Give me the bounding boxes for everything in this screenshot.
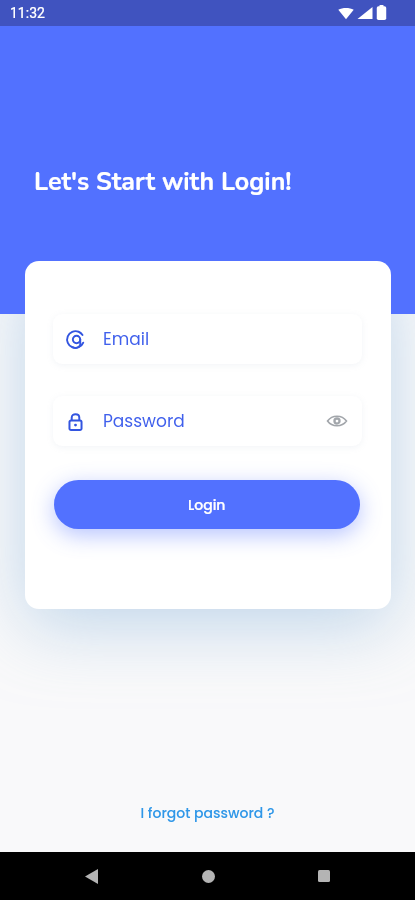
button[interactable]: Email xyxy=(53,314,362,364)
staticText: Login xyxy=(188,495,226,515)
button[interactable]: Home xyxy=(182,852,234,900)
button[interactable]: Login xyxy=(54,480,360,529)
staticText: 11:32 xyxy=(10,5,45,21)
button[interactable]: Recent apps xyxy=(298,852,350,900)
button[interactable]: Back xyxy=(65,852,117,900)
staticText: Password xyxy=(103,409,185,433)
button[interactable]: Password xyxy=(53,396,362,446)
button[interactable]: I forgot password ? xyxy=(140,803,275,823)
staticText: Email xyxy=(103,327,150,351)
staticText: Let's Start with Login! xyxy=(34,165,292,199)
button[interactable]: Show password xyxy=(326,410,348,432)
